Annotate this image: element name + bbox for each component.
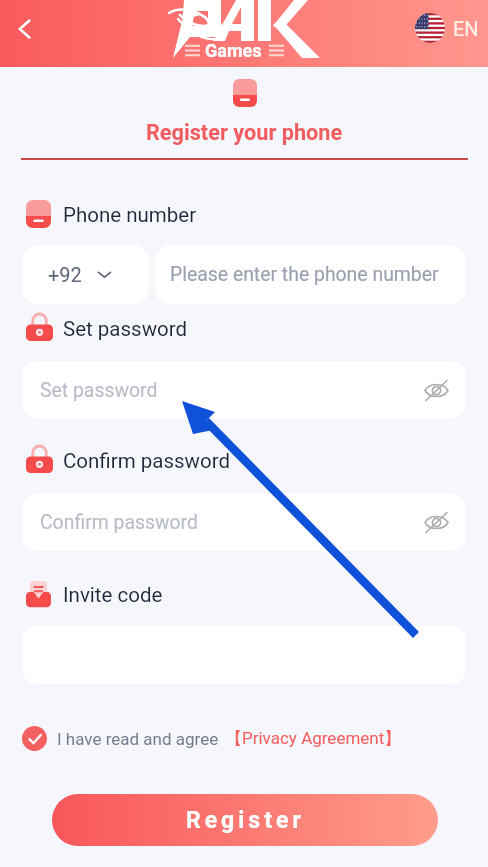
button[interactable]: EN <box>415 13 479 43</box>
button[interactable]: Show password <box>420 374 452 406</box>
button[interactable]: +92 <box>22 245 149 304</box>
staticText: Invite code <box>63 583 163 607</box>
button[interactable]: Back <box>2 7 46 51</box>
staticText: Games <box>205 40 262 61</box>
staticText: Please enter the phone number <box>170 263 439 286</box>
button[interactable]: Register <box>52 794 438 846</box>
button[interactable]: 【Privacy Agreement】 <box>225 728 402 749</box>
button[interactable]: Please enter the phone number <box>155 245 466 304</box>
button[interactable]: Set password <box>22 361 466 419</box>
staticText: I have read and agree <box>57 729 219 749</box>
staticText: Confirm password <box>63 449 230 473</box>
button[interactable]: Show password <box>420 506 452 538</box>
staticText: Register your phone <box>146 120 343 145</box>
button[interactable]: I have read and agree <box>22 726 47 751</box>
staticText: Set password <box>63 317 188 341</box>
staticText: EN <box>453 17 479 40</box>
button[interactable] <box>22 626 466 684</box>
button[interactable]: Confirm password <box>22 493 466 551</box>
staticText: Register <box>186 807 305 834</box>
staticText: +92 <box>48 263 82 286</box>
staticText: Phone number <box>63 203 197 227</box>
staticText: Confirm password <box>40 511 198 534</box>
staticText: 【Privacy Agreement】 <box>225 728 402 749</box>
staticText: Set password <box>40 379 158 402</box>
